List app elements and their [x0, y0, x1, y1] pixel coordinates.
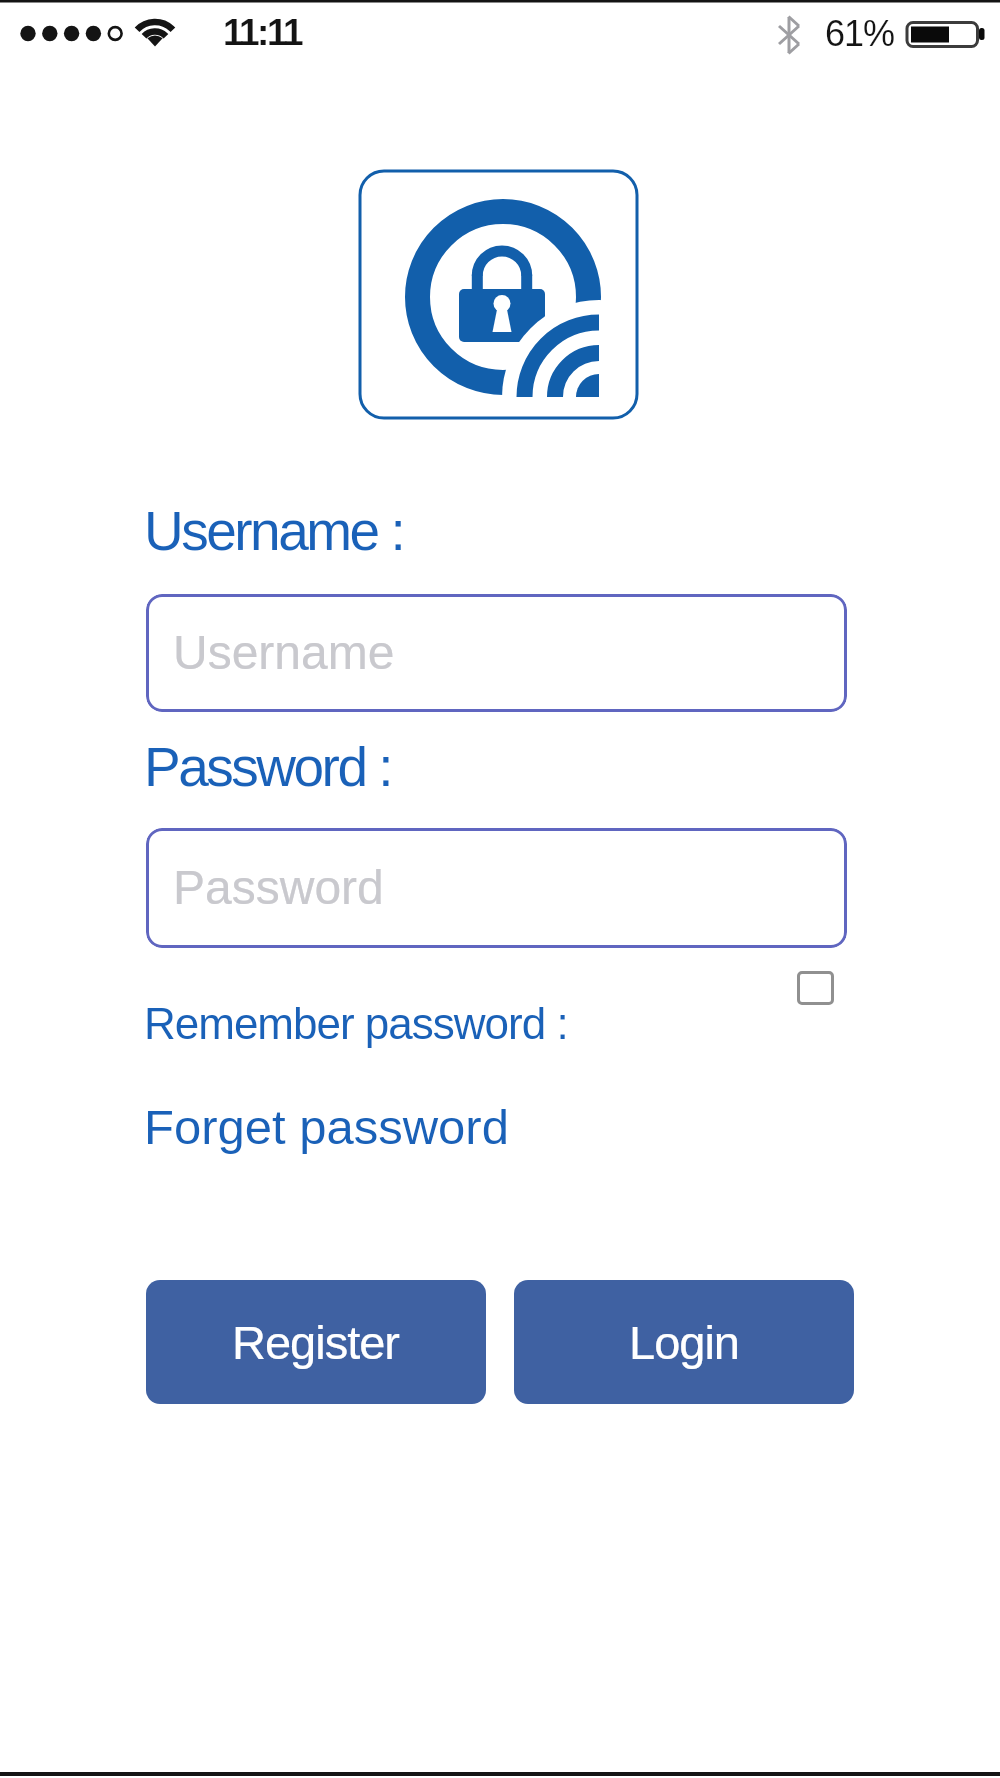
- staticText: 11:11: [223, 12, 302, 53]
- staticText: Remember password :: [144, 999, 568, 1048]
- staticText: Username :: [144, 500, 404, 561]
- staticText: Register: [232, 1316, 400, 1369]
- staticText: Password: [173, 861, 384, 915]
- staticText: 61%: [825, 13, 895, 53]
- button[interactable]: Password: [146, 828, 847, 948]
- button[interactable]: Register: [146, 1280, 486, 1404]
- staticText: Username: [173, 626, 395, 680]
- button[interactable]: Forget password: [144, 1100, 509, 1155]
- button[interactable]: Login: [514, 1280, 854, 1404]
- button[interactable]: Username: [146, 594, 847, 712]
- staticText: Password :: [144, 736, 392, 797]
- staticText: Login: [629, 1316, 739, 1369]
- staticText: Forget password: [144, 1100, 509, 1155]
- button[interactable]: [797, 971, 834, 1005]
